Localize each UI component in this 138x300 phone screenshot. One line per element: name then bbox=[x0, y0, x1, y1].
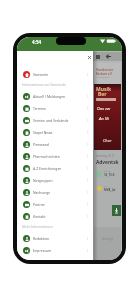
button[interactable]: Notgruppen bbox=[17, 174, 93, 186]
staticText: praesentiert bbox=[97, 76, 110, 79]
staticText: Ort bbox=[104, 185, 108, 188]
staticText: A-Z Einrichtungen bbox=[33, 166, 86, 171]
staticText: Informationen zur Gemeinde bbox=[22, 83, 66, 87]
staticText: Termin bbox=[104, 170, 112, 173]
staticText: Stapel News bbox=[33, 130, 86, 135]
staticText: Redaktion bbox=[33, 236, 86, 241]
staticText: Ber bbox=[98, 91, 107, 98]
staticText: Anzeige bbox=[102, 237, 114, 241]
staticText: An Ni bbox=[99, 116, 109, 122]
button[interactable]: Startseite bbox=[17, 68, 93, 80]
staticText: Berkum e.V. bbox=[96, 72, 113, 76]
staticText: Termine bbox=[33, 106, 86, 111]
button[interactable]: Redaktion bbox=[17, 232, 93, 244]
staticText: Notgruppen bbox=[33, 178, 86, 183]
staticText: Adventsk bbox=[96, 159, 119, 166]
button[interactable]: Close bbox=[87, 55, 92, 60]
staticText: Musikverein bbox=[96, 68, 114, 72]
staticText: Aktuell / Meldungen bbox=[33, 94, 86, 99]
staticText: Partner bbox=[33, 202, 86, 207]
staticText: Das zw bbox=[97, 106, 110, 112]
button[interactable]: Back bbox=[106, 54, 111, 59]
staticText: Pinnwand bbox=[33, 142, 86, 147]
button[interactable]: Pfarrnachrichten bbox=[17, 150, 93, 162]
staticText: Vereine und Verbände bbox=[33, 118, 86, 123]
button[interactable]: Partner bbox=[17, 198, 93, 210]
staticText: Impressum bbox=[33, 248, 86, 253]
button[interactable]: Vereine und Verbände bbox=[17, 114, 93, 126]
button[interactable]: Nachsorge bbox=[17, 186, 93, 198]
staticText: 14, 15:0 bbox=[104, 173, 115, 177]
staticText: Musik bbox=[96, 86, 112, 93]
staticText: MVB, Jul bbox=[104, 188, 116, 192]
staticText: Pfarrnachrichten bbox=[33, 154, 86, 159]
staticText: Samstag, 20. D bbox=[96, 154, 115, 158]
button[interactable]: Stapel News bbox=[17, 126, 93, 138]
button[interactable]: A-Z Einrichtungen bbox=[17, 162, 93, 174]
button[interactable]: Kontakt bbox=[17, 210, 93, 222]
button[interactable]: Share bbox=[112, 205, 121, 216]
staticText: 4:54 bbox=[32, 39, 42, 45]
button[interactable]: Termine bbox=[17, 102, 93, 114]
staticText: Mehr Informationen bbox=[22, 225, 53, 229]
button[interactable]: Aktuell / Meldungen bbox=[17, 90, 93, 102]
staticText: Startseite bbox=[33, 72, 86, 77]
button[interactable]: Impressum bbox=[17, 244, 93, 256]
button[interactable]: Pinnwand bbox=[17, 138, 93, 150]
staticText: Nachsorge bbox=[33, 190, 86, 195]
staticText: Chor bbox=[103, 138, 112, 143]
staticText: Kontakt bbox=[33, 214, 86, 219]
